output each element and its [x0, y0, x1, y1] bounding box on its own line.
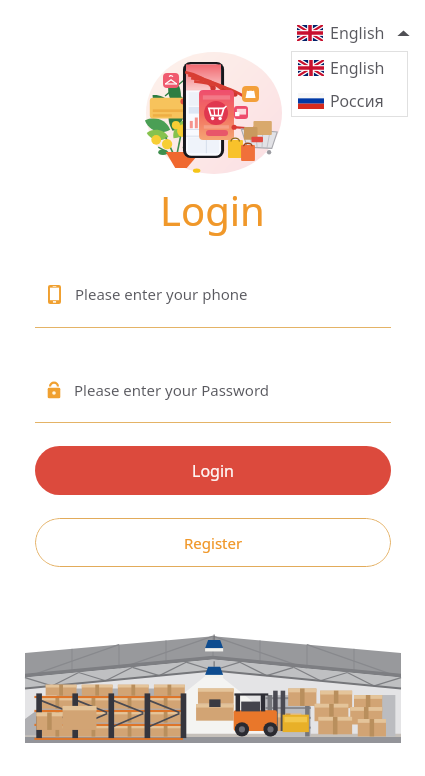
staticText: Login — [160, 183, 265, 237]
staticText: Register — [184, 533, 243, 553]
button[interactable]: English — [297, 21, 410, 45]
staticText: English — [330, 22, 385, 44]
button[interactable]: Register — [35, 518, 391, 567]
staticText: Россия — [330, 90, 384, 112]
staticText: Please enter your Password — [74, 380, 270, 400]
other: Collapse language menu — [397, 29, 410, 38]
button[interactable]: Россия — [291, 84, 408, 117]
staticText: Login — [192, 460, 234, 482]
staticText: Please enter your phone — [75, 284, 248, 304]
button[interactable]: Login — [35, 446, 391, 495]
button[interactable]: Please enter your Password — [35, 378, 391, 402]
staticText: English — [330, 57, 385, 79]
button[interactable]: Please enter your phone — [35, 282, 391, 306]
button[interactable]: English — [291, 51, 408, 84]
